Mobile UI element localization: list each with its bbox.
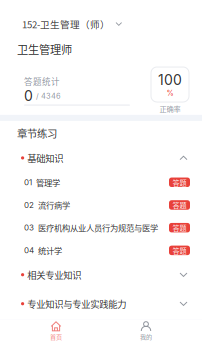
staticText: 基础知识 bbox=[27, 151, 63, 165]
staticText: 01 bbox=[24, 177, 32, 187]
staticText: 首页 bbox=[50, 332, 62, 341]
staticText: 答题 bbox=[172, 177, 186, 187]
staticText: 0 bbox=[24, 87, 33, 104]
staticText: 管理学 bbox=[36, 176, 60, 188]
button[interactable]: 我的 bbox=[101, 321, 191, 347]
button[interactable]: 01 bbox=[0, 171, 202, 194]
staticText: 正确率 bbox=[159, 103, 180, 114]
staticText: 卫生管理师 bbox=[17, 41, 72, 57]
button[interactable]: 04 bbox=[0, 239, 202, 262]
staticText: 流行病学 bbox=[38, 199, 70, 211]
staticText: 医疗机构从业人员行为规范与医学 bbox=[38, 222, 158, 234]
staticText: 02 bbox=[24, 200, 34, 210]
staticText: 152-卫生管理（师） bbox=[22, 17, 110, 31]
staticText: 04 bbox=[24, 245, 34, 255]
button[interactable]: 专业知识与专业实践能力 bbox=[0, 288, 202, 320]
button[interactable]: 基础知识 bbox=[0, 145, 202, 171]
staticText: 答题 bbox=[172, 222, 186, 233]
staticText: 答题 bbox=[172, 245, 186, 256]
staticText: 相关专业知识 bbox=[27, 268, 81, 281]
staticText: 章节练习 bbox=[17, 125, 57, 140]
staticText: 03 bbox=[24, 223, 34, 232]
staticText: / 4346 bbox=[34, 91, 61, 100]
button[interactable]: 03 bbox=[0, 216, 202, 239]
staticText: 统计学 bbox=[38, 244, 62, 256]
staticText: 答题统计 bbox=[24, 75, 60, 87]
staticText: 我的 bbox=[140, 332, 152, 341]
staticText: 专业知识与专业实践能力 bbox=[27, 297, 126, 310]
button[interactable]: 相关专业知识 bbox=[0, 262, 202, 288]
staticText: % bbox=[166, 88, 173, 97]
staticText: 100 bbox=[158, 71, 182, 88]
button[interactable]: 02 bbox=[0, 194, 202, 216]
staticText: 答题 bbox=[172, 200, 186, 210]
button[interactable]: 首页 bbox=[11, 321, 101, 347]
